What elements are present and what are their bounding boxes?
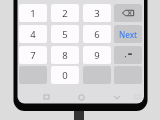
staticText: 4 — [30, 28, 36, 41]
button[interactable]: 9 — [83, 46, 111, 64]
button[interactable]: Home — [75, 91, 87, 103]
staticText: 8 — [62, 49, 68, 62]
button[interactable]: Recent apps — [40, 91, 52, 103]
staticText: 7 — [30, 49, 36, 62]
staticText: 6 — [94, 28, 100, 41]
button[interactable]: Switch keyboard — [131, 91, 143, 103]
button[interactable]: 6 — [83, 25, 111, 43]
staticText: Next — [119, 29, 138, 40]
button[interactable]: Next — [114, 25, 142, 43]
button[interactable]: 0 — [51, 66, 79, 84]
button[interactable]: 2 — [51, 4, 79, 22]
staticText: 0 — [62, 69, 68, 82]
button[interactable]: 8 — [51, 46, 79, 64]
button[interactable]: Backspace — [114, 4, 142, 22]
staticText: 9 — [94, 49, 100, 62]
button[interactable]: 3 — [83, 4, 111, 22]
button[interactable]: 4 — [19, 25, 47, 43]
staticText: 5 — [62, 28, 68, 41]
button[interactable]: Dash and comma — [114, 46, 142, 64]
button[interactable]: Hide keyboard — [111, 91, 123, 103]
staticText: 2 — [62, 7, 68, 20]
button[interactable]: 1 — [19, 4, 47, 22]
staticText: 1 — [30, 7, 36, 20]
staticText: 3 — [94, 7, 100, 20]
button[interactable]: 7 — [19, 46, 47, 64]
button[interactable]: 5 — [51, 25, 79, 43]
